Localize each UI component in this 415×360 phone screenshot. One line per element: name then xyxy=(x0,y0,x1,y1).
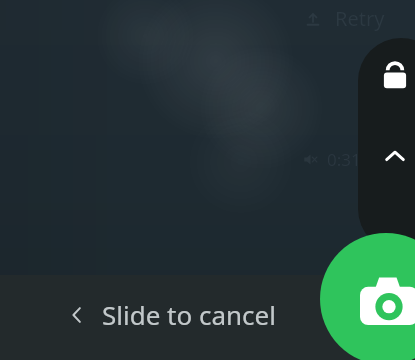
button[interactable]: Slide to cancel xyxy=(58,289,286,340)
button[interactable]: Retry xyxy=(296,0,393,38)
staticText: Slide to cancel xyxy=(102,297,276,332)
staticText: 0:31 xyxy=(327,148,361,171)
button[interactable]: Camera xyxy=(320,233,415,360)
staticText: Retry xyxy=(335,5,385,32)
button[interactable]: Lock recording xyxy=(358,38,415,252)
